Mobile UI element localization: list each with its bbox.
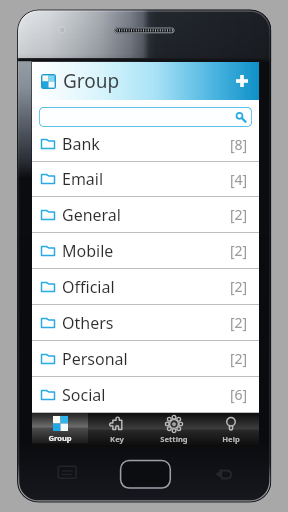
- staticText: Mobile: [62, 240, 114, 262]
- staticText: Others: [62, 312, 114, 334]
- staticText: Key: [110, 434, 124, 444]
- staticText: Group: [63, 68, 120, 94]
- staticText: Personal: [62, 348, 128, 370]
- button[interactable]: Official: [32, 269, 259, 305]
- staticText: General: [62, 204, 121, 226]
- staticText: Email: [62, 168, 104, 190]
- staticText: [6]: [230, 385, 248, 404]
- button[interactable]: Mobile: [32, 233, 259, 269]
- staticText: Setting: [160, 434, 188, 444]
- button[interactable]: Key: [88, 413, 145, 444]
- button[interactable]: Setting: [145, 413, 202, 444]
- button[interactable]: Add group: [225, 64, 259, 98]
- staticText: [2]: [230, 241, 248, 260]
- staticText: [2]: [230, 205, 248, 224]
- button[interactable]: Bank: [32, 127, 259, 162]
- button[interactable]: Social: [32, 377, 259, 413]
- staticText: Bank: [62, 133, 100, 155]
- staticText: Official: [62, 276, 115, 298]
- staticText: Social: [62, 384, 106, 406]
- staticText: [2]: [230, 313, 248, 332]
- button[interactable]: Others: [32, 305, 259, 341]
- button[interactable]: General: [32, 197, 259, 233]
- staticText: [8]: [230, 135, 248, 154]
- staticText: Group: [48, 433, 72, 443]
- staticText: [2]: [230, 349, 248, 368]
- button[interactable]: Group: [32, 413, 88, 443]
- staticText: Help: [222, 434, 240, 444]
- button[interactable]: Personal: [32, 341, 259, 377]
- button[interactable]: Help: [202, 413, 259, 444]
- staticText: [2]: [230, 277, 248, 296]
- button[interactable]: Search: [39, 107, 252, 127]
- button[interactable]: Email: [32, 162, 259, 197]
- staticText: [4]: [230, 170, 248, 189]
